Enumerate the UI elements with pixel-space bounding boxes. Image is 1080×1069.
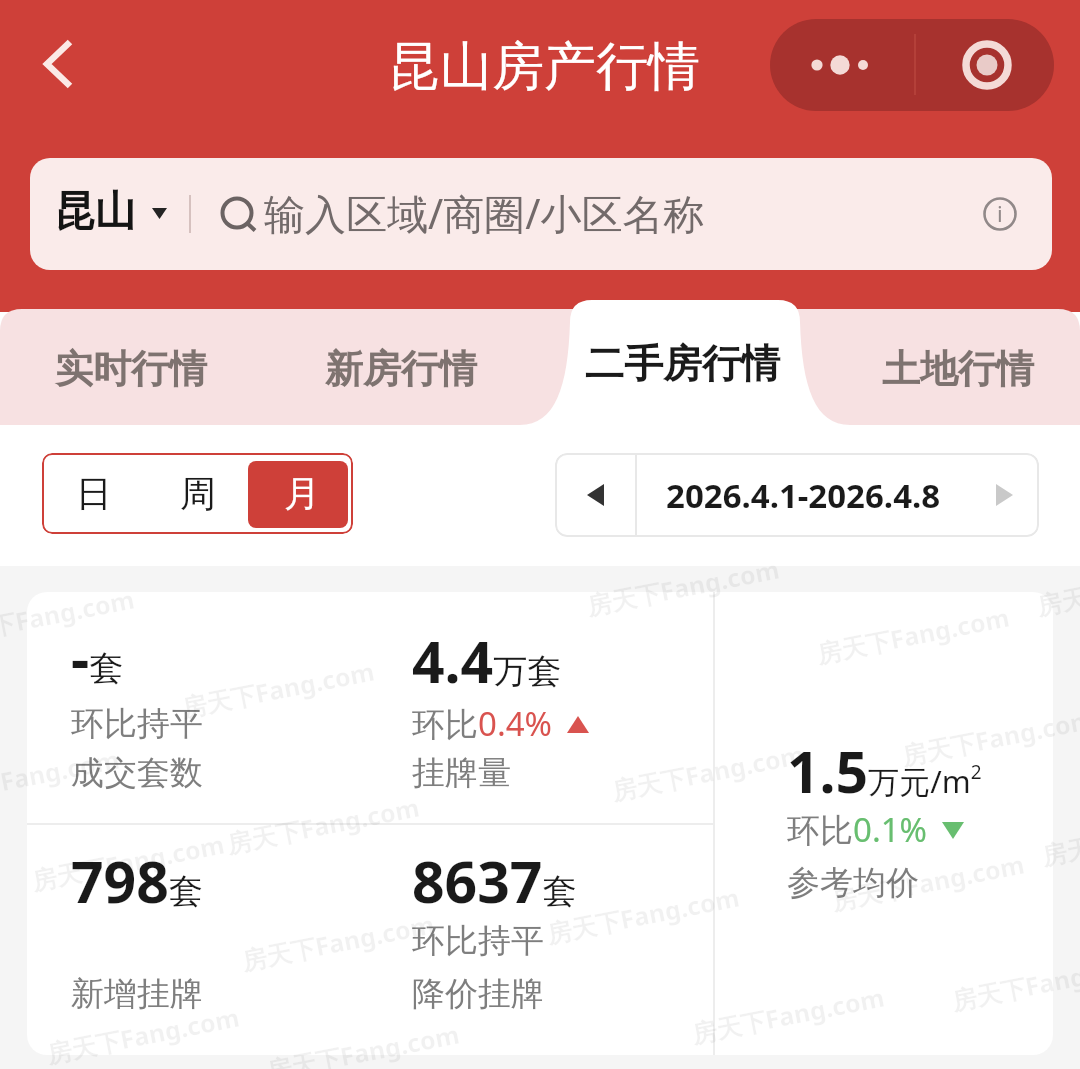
button[interactable] xyxy=(715,592,1053,1055)
button[interactable]: More options xyxy=(770,19,914,111)
staticText: 4.4万套 xyxy=(412,622,562,700)
staticText: 昆山房产行情 xyxy=(388,34,700,100)
staticText: 参考均价 xyxy=(787,862,919,904)
staticText: 房天下Fang.com xyxy=(544,880,742,950)
button[interactable]: 周 xyxy=(146,453,250,534)
button[interactable]: 日 xyxy=(42,453,146,534)
staticText: 成交套数 xyxy=(71,752,203,794)
staticText: 房天下Fang.com xyxy=(0,582,137,652)
staticText: 房天下Fang.com xyxy=(814,600,1012,670)
staticText: 房天下Fang.com xyxy=(44,1000,242,1069)
staticText: 新房行情 xyxy=(325,345,477,393)
staticText: 二手房行情 xyxy=(585,339,780,388)
button[interactable] xyxy=(27,825,370,1055)
staticText: 房天下Fang.com xyxy=(829,847,1027,917)
staticText: 土地行情 xyxy=(882,345,1034,393)
staticText: 环比0.1% xyxy=(787,807,928,852)
staticText: 房天下Fang.com xyxy=(689,980,887,1050)
button[interactable]: 新房行情 xyxy=(301,311,501,427)
button[interactable]: 二手房行情 xyxy=(562,305,802,421)
staticText: 挂牌量 xyxy=(412,752,511,794)
button[interactable]: 2026.4.1-2026.4.8 xyxy=(637,453,969,537)
staticText: 周 xyxy=(180,471,216,516)
button[interactable]: Information xyxy=(962,176,1038,252)
staticText: 房天下Fang.com xyxy=(179,654,377,724)
button[interactable]: 土地行情 xyxy=(858,311,1058,427)
staticText: 房天下Fang.com xyxy=(224,790,422,860)
staticText: 降价挂牌 xyxy=(412,973,544,1015)
staticText: 房天下Fang.com xyxy=(899,702,1080,772)
button[interactable]: Back xyxy=(18,18,110,110)
button[interactable]: Next period xyxy=(969,453,1039,537)
staticText: 昆山 xyxy=(54,186,136,238)
staticText: 1.5万元/m2 xyxy=(787,732,982,810)
button[interactable]: Previous period xyxy=(555,453,635,537)
staticText: 环比0.4% xyxy=(412,701,553,746)
staticText: 输入区域/商圈/小区名称 xyxy=(264,185,705,241)
staticText: 实时行情 xyxy=(55,345,207,393)
button[interactable] xyxy=(370,592,713,823)
staticText: 日 xyxy=(76,471,112,516)
staticText: 房天下Fang.com xyxy=(584,552,782,622)
staticText: 新增挂牌 xyxy=(71,973,203,1015)
staticText: 房天下Fang.com xyxy=(1034,552,1080,622)
staticText: 798套 xyxy=(71,842,203,920)
staticText: 8637套 xyxy=(412,842,577,920)
staticText: 月 xyxy=(284,471,320,516)
staticText: 房天下Fang.com xyxy=(239,907,437,977)
staticText: 房天下Fang.com xyxy=(29,827,227,897)
staticText: 环比持平 xyxy=(412,920,544,962)
staticText: -套 xyxy=(71,619,124,697)
staticText: 环比持平 xyxy=(71,703,203,745)
button[interactable]: Close mini program xyxy=(916,19,1054,111)
staticText: 房天下Fang.com xyxy=(949,947,1080,1017)
button[interactable]: 月 xyxy=(250,453,353,534)
staticText: 房天下Fang.com xyxy=(609,737,807,807)
button[interactable] xyxy=(27,592,370,823)
staticText: 2026.4.1-2026.4.8 xyxy=(666,473,941,518)
staticText: 房天下Fang.com xyxy=(1039,802,1080,872)
staticText: i xyxy=(997,198,1003,228)
staticText: 房天下Fang.com xyxy=(0,742,122,812)
staticText: 房天下Fang.com xyxy=(264,1017,462,1069)
button[interactable] xyxy=(370,825,713,1055)
button[interactable]: 实时行情 xyxy=(31,311,231,427)
button[interactable]: 昆山 xyxy=(30,158,1052,270)
